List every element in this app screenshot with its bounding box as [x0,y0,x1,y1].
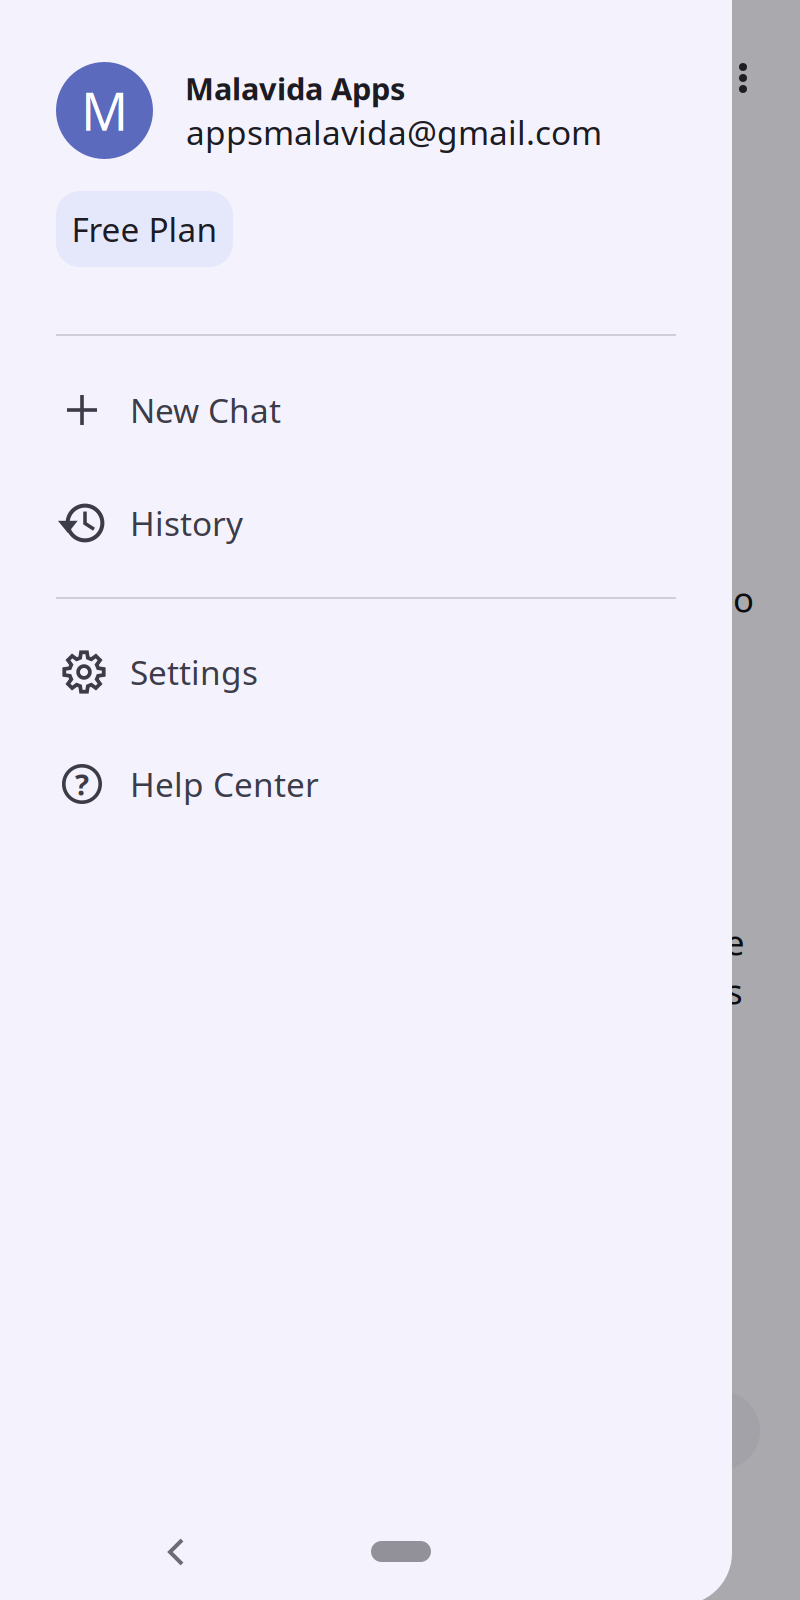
staticText: Free Plan [71,207,217,251]
button[interactable]: M [0,0,732,175]
button[interactable]: History [0,466,732,580]
button[interactable]: Settings [0,615,732,729]
staticText: appsmalavida@gmail.com [186,110,602,154]
staticText: Settings [130,650,258,694]
button[interactable]: Back [152,1522,200,1582]
button[interactable]: Free Plan [56,191,233,267]
staticText: s [726,968,743,1014]
button[interactable]: New Chat [0,353,732,467]
staticText: M [81,76,128,145]
staticText: New Chat [130,388,281,432]
staticText: ? [75,764,89,803]
staticText: History [130,501,243,545]
staticText: Help Center [130,762,319,806]
staticText: o [733,576,754,622]
staticText: e [725,919,745,965]
staticText: Malavida Apps [185,68,405,109]
button[interactable]: ? [0,727,732,841]
